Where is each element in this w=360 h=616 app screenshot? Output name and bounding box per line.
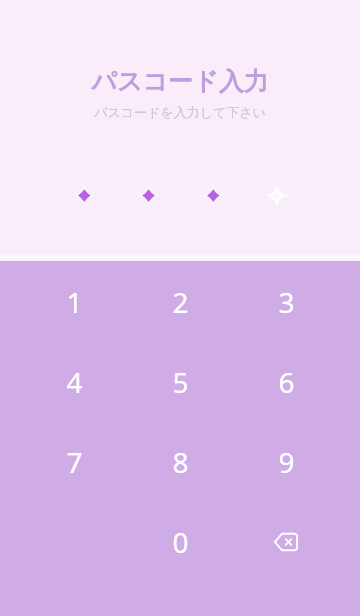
button[interactable]: 7 bbox=[21, 422, 127, 502]
staticText: 1 bbox=[66, 283, 83, 321]
staticText: パスコード入力 bbox=[91, 66, 269, 97]
staticText: 6 bbox=[278, 363, 295, 401]
button[interactable]: 5 bbox=[127, 342, 233, 422]
button[interactable]: Delete bbox=[233, 502, 339, 582]
staticText: 8 bbox=[172, 443, 189, 481]
button[interactable]: 4 bbox=[21, 342, 127, 422]
staticText: 3 bbox=[278, 283, 295, 321]
button[interactable]: 9 bbox=[233, 422, 339, 502]
button[interactable]: 2 bbox=[127, 262, 233, 342]
staticText: 2 bbox=[172, 283, 189, 321]
staticText: 7 bbox=[66, 443, 83, 481]
staticText: 9 bbox=[278, 443, 295, 481]
button[interactable]: 1 bbox=[21, 262, 127, 342]
staticText: パスコードを入力して下さい bbox=[94, 104, 266, 120]
staticText: 0 bbox=[172, 523, 189, 561]
button[interactable]: 0 bbox=[127, 502, 233, 582]
staticText: 5 bbox=[172, 363, 189, 401]
staticText: 4 bbox=[66, 363, 83, 401]
button[interactable]: 6 bbox=[233, 342, 339, 422]
button[interactable]: 8 bbox=[127, 422, 233, 502]
button[interactable]: 3 bbox=[233, 262, 339, 342]
